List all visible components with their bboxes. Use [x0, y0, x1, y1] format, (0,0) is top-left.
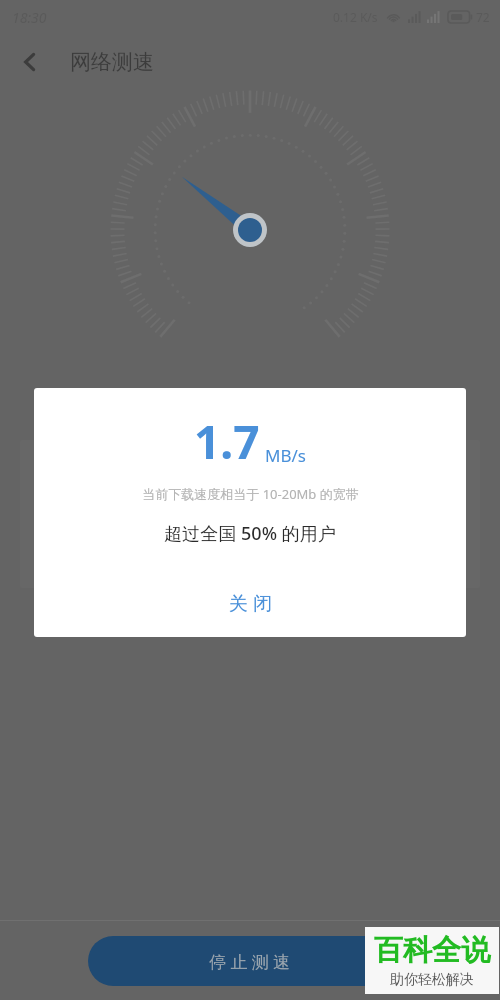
staticText: 18:30: [12, 8, 47, 27]
staticText: 1.7: [194, 410, 260, 473]
staticText: 1.7MB/s: [195, 508, 276, 537]
button[interactable]: 返回: [6, 38, 54, 86]
staticText: 72: [476, 9, 490, 25]
staticText: 停 止 测 速: [209, 950, 291, 973]
button[interactable]: 停 止 测 速: [88, 936, 412, 986]
staticText: MB/s: [265, 444, 306, 467]
staticText: 超过全国 50% 的用户: [164, 521, 336, 546]
button[interactable]: 关 闭: [203, 584, 298, 622]
staticText: 关 闭: [229, 590, 272, 616]
staticText: 百科全说: [374, 932, 490, 969]
button[interactable]: 1.7MB/s: [179, 440, 322, 588]
staticText: 网络测速: [70, 49, 154, 75]
button[interactable]: 145ms: [20, 440, 164, 588]
staticText: 当前下载速度相当于 10-20Mb 的宽带: [142, 485, 359, 503]
button[interactable]: 0MB/s: [337, 440, 480, 588]
staticText: 助你轻松解决: [390, 971, 474, 989]
